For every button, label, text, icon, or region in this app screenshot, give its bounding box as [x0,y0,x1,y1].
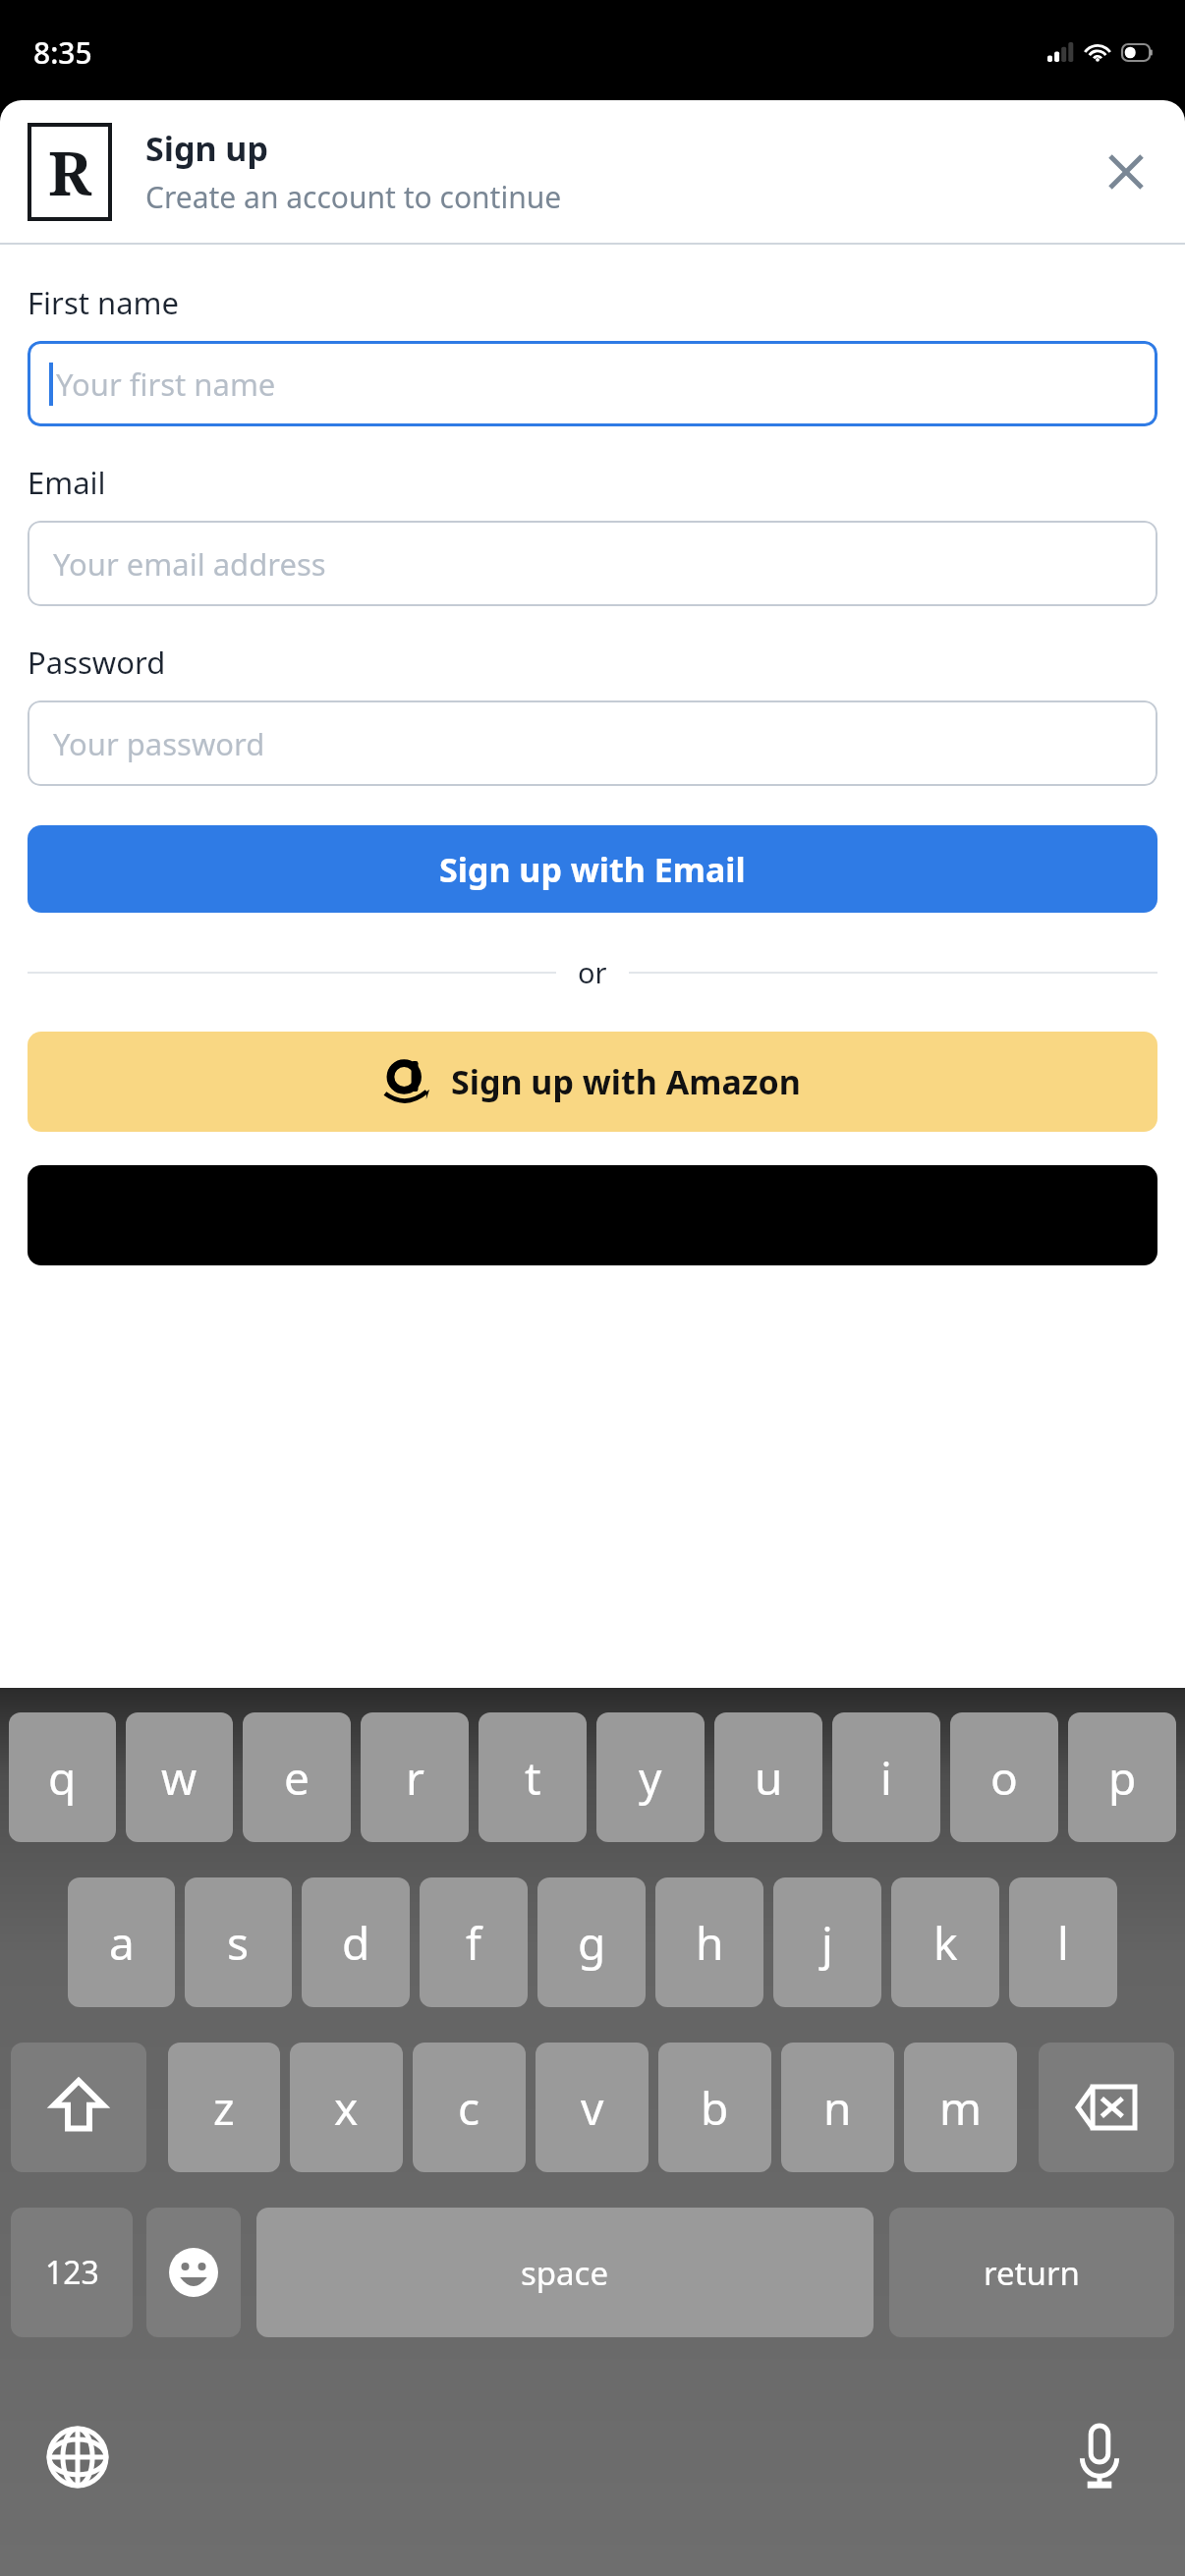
button[interactable]: f [420,1877,528,2007]
button[interactable]: k [891,1877,999,2007]
button[interactable]: Change keyboard language [35,2415,120,2499]
staticText: t [525,1747,541,1809]
staticText: x [334,2077,359,2139]
staticText: w [161,1747,197,1809]
button[interactable]: x [290,2043,403,2172]
staticText: a [109,1912,135,1974]
button[interactable]: c [413,2043,526,2172]
button[interactable]: v [536,2043,649,2172]
staticText: Create an account to continue [145,177,562,217]
button[interactable]: return [889,2208,1174,2337]
staticText: j [821,1912,833,1974]
staticText: q [48,1747,77,1809]
staticText: u [755,1747,783,1809]
staticText: Email [28,462,106,503]
staticText: h [696,1912,724,1974]
staticText: Sign up with Email [439,847,746,892]
button[interactable]: n [781,2043,894,2172]
staticText: Your email address [53,543,326,585]
staticText: R [48,131,92,213]
button[interactable]: e [243,1712,351,1842]
button[interactable]: Your password [28,700,1157,786]
staticText: 8:35 [33,32,92,73]
button[interactable]: l [1009,1877,1117,2007]
staticText: Your first name [56,364,276,405]
button[interactable]: r [361,1712,469,1842]
staticText: return [984,2251,1080,2295]
staticText: r [406,1747,424,1809]
staticText: v [581,2077,604,2139]
button[interactable]: a [68,1877,175,2007]
staticText: 123 [45,2251,99,2294]
staticText: Your password [53,723,265,764]
button[interactable]: Your first name [28,341,1157,426]
button[interactable]: w [126,1712,233,1842]
button[interactable]: Shift [11,2043,146,2172]
button[interactable]: p [1068,1712,1176,1842]
staticText: p [1108,1747,1137,1809]
button[interactable]: b [658,2043,771,2172]
button[interactable]: space [256,2208,874,2337]
button[interactable]: Backspace [1039,2043,1174,2172]
button[interactable]: h [655,1877,763,2007]
staticText: or [578,953,607,991]
staticText: First name [28,282,180,323]
button[interactable]: y [596,1712,705,1842]
button[interactable]: g [537,1877,646,2007]
button[interactable]: Your email address [28,521,1157,606]
button[interactable]: Emoji [146,2208,241,2337]
button[interactable]: o [950,1712,1058,1842]
button[interactable]: m [904,2043,1017,2172]
staticText: o [990,1747,1018,1809]
staticText: Password [28,642,166,683]
staticText: space [521,2251,609,2295]
button[interactable]: Dictation [1057,2415,1142,2499]
staticText: i [880,1747,892,1809]
button[interactable]: j [773,1877,881,2007]
staticText: Sign up [145,126,268,171]
staticText: Sign up with Amazon [451,1059,801,1104]
button[interactable]: 123 [11,2208,133,2337]
staticText: n [823,2077,852,2139]
button[interactable]: t [479,1712,587,1842]
staticText: m [939,2077,983,2139]
staticText: f [466,1912,481,1974]
staticText: k [933,1912,958,1974]
staticText: b [701,2077,729,2139]
button[interactable]: Sign up with Email [28,825,1157,913]
button[interactable]: Sign up with Apple [28,1165,1157,1265]
staticText: s [227,1912,250,1974]
button[interactable]: s [185,1877,292,2007]
staticText: d [342,1912,370,1974]
button[interactable]: q [9,1712,116,1842]
button[interactable]: Sign up with Amazon [28,1032,1157,1132]
staticText: y [639,1747,662,1809]
staticText: z [213,2077,235,2139]
button[interactable]: u [714,1712,822,1842]
button[interactable]: i [832,1712,940,1842]
staticText: l [1057,1912,1069,1974]
staticText: e [284,1747,310,1809]
staticText: g [578,1912,606,1974]
staticText: c [458,2077,480,2139]
button[interactable]: z [168,2043,280,2172]
button[interactable]: d [302,1877,410,2007]
button[interactable]: Close [1091,137,1161,207]
